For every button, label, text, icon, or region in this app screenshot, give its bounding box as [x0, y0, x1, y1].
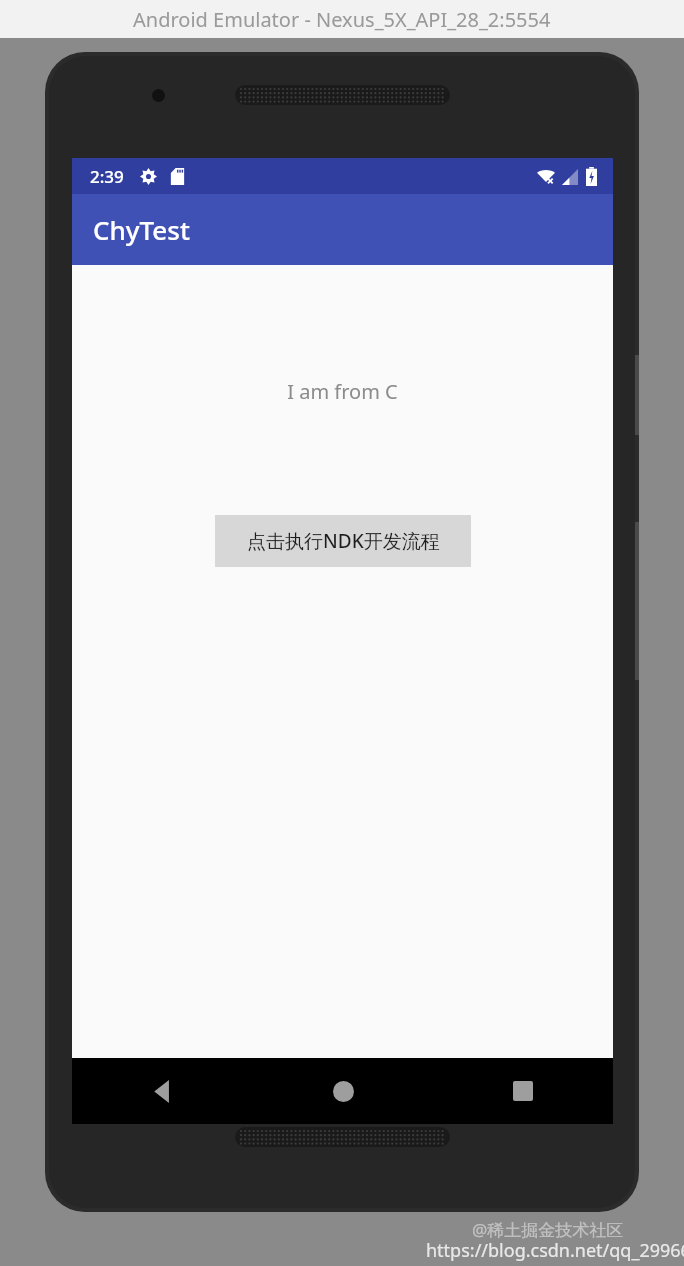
staticText: Android Emulator - Nexus_5X_API_28_2:555…: [133, 6, 551, 33]
staticText: https://blog.csdn.net/qq_29966203: [426, 1238, 684, 1263]
button[interactable]: Recent apps: [433, 1058, 613, 1124]
staticText: 点击执行NDK开发流程: [247, 528, 440, 554]
button[interactable]: 点击执行NDK开发流程: [215, 515, 471, 567]
staticText: 2:39: [90, 165, 124, 188]
staticText: I am from C: [287, 378, 398, 405]
staticText: @稀土掘金技术社区: [472, 1218, 624, 1241]
button[interactable]: Home: [253, 1058, 433, 1124]
button[interactable]: Back: [72, 1058, 253, 1124]
staticText: ChyTest: [93, 212, 190, 247]
